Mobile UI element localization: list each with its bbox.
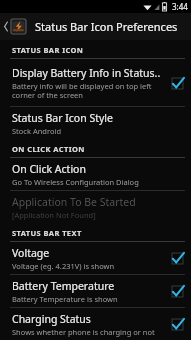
staticText: Display Battery Info in Status.. — [12, 66, 161, 80]
button[interactable]: Charging Status — [0, 308, 191, 340]
staticText: Go To Wireless Configuration Dialog — [12, 177, 139, 187]
button[interactable]: Toggle — [169, 75, 185, 91]
button[interactable]: Battery Temperature — [0, 275, 191, 307]
button[interactable]: On Click Action — [0, 158, 191, 190]
button[interactable]: Toggle — [169, 316, 185, 332]
staticText: Shows whether phone is charging or not — [12, 327, 155, 337]
button[interactable]: Status Bar Icon Style — [0, 107, 191, 139]
staticText: Stock Android — [12, 126, 61, 136]
staticText: Battery Temperature — [12, 279, 115, 293]
button[interactable]: Navigate up — [0, 13, 30, 40]
staticText: Application To Be Started — [12, 195, 136, 209]
staticText: ON CLICK ACTION — [12, 144, 85, 154]
staticText: On Click Action — [12, 162, 86, 176]
staticText: STATUS BAR ICON — [12, 45, 84, 55]
button[interactable]: Display Battery Info in Status.. — [0, 59, 191, 106]
button[interactable]: Toggle — [169, 283, 185, 299]
staticText: [Application Not Found] — [12, 210, 96, 220]
staticText: Voltage — [12, 246, 50, 260]
staticText: Battery Temperature is shown — [12, 294, 118, 304]
button[interactable]: Application To Be Started — [0, 191, 191, 223]
staticText: 3:44 — [172, 1, 188, 12]
staticText: Charging Status — [12, 312, 91, 326]
staticText: Battery info will be displayed on top le… — [12, 81, 163, 100]
staticText: Status Bar Icon Preferences — [35, 19, 178, 34]
staticText: Status Bar Icon Style — [12, 111, 113, 125]
button[interactable]: Toggle — [169, 250, 185, 266]
button[interactable]: Voltage — [0, 242, 191, 274]
staticText: Voltage (eg. 4.231V) is shown — [12, 261, 115, 271]
staticText: STATUS BAR TEXT — [12, 228, 82, 238]
